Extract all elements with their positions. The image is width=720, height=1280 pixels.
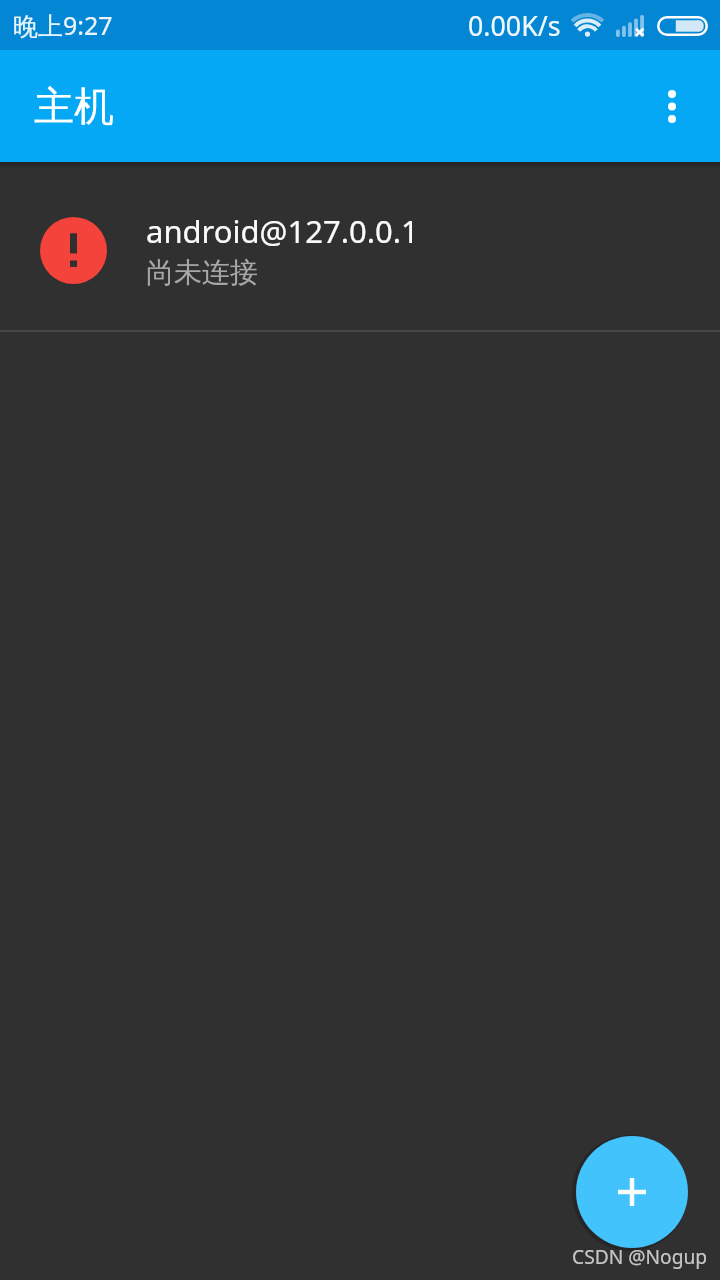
button[interactable]: More options bbox=[624, 58, 720, 154]
staticText: 晚上9:27 bbox=[13, 8, 113, 42]
staticText: android@127.0.0.1 bbox=[146, 210, 419, 252]
staticText: 尚未连接 bbox=[146, 255, 258, 290]
staticText: 0.00K/s bbox=[468, 7, 561, 44]
staticText: CSDN @Nogup bbox=[572, 1243, 708, 1269]
button[interactable]: android@127.0.0.1 bbox=[0, 162, 720, 332]
staticText: 主机 bbox=[34, 81, 114, 131]
button[interactable]: Add host bbox=[576, 1136, 688, 1248]
